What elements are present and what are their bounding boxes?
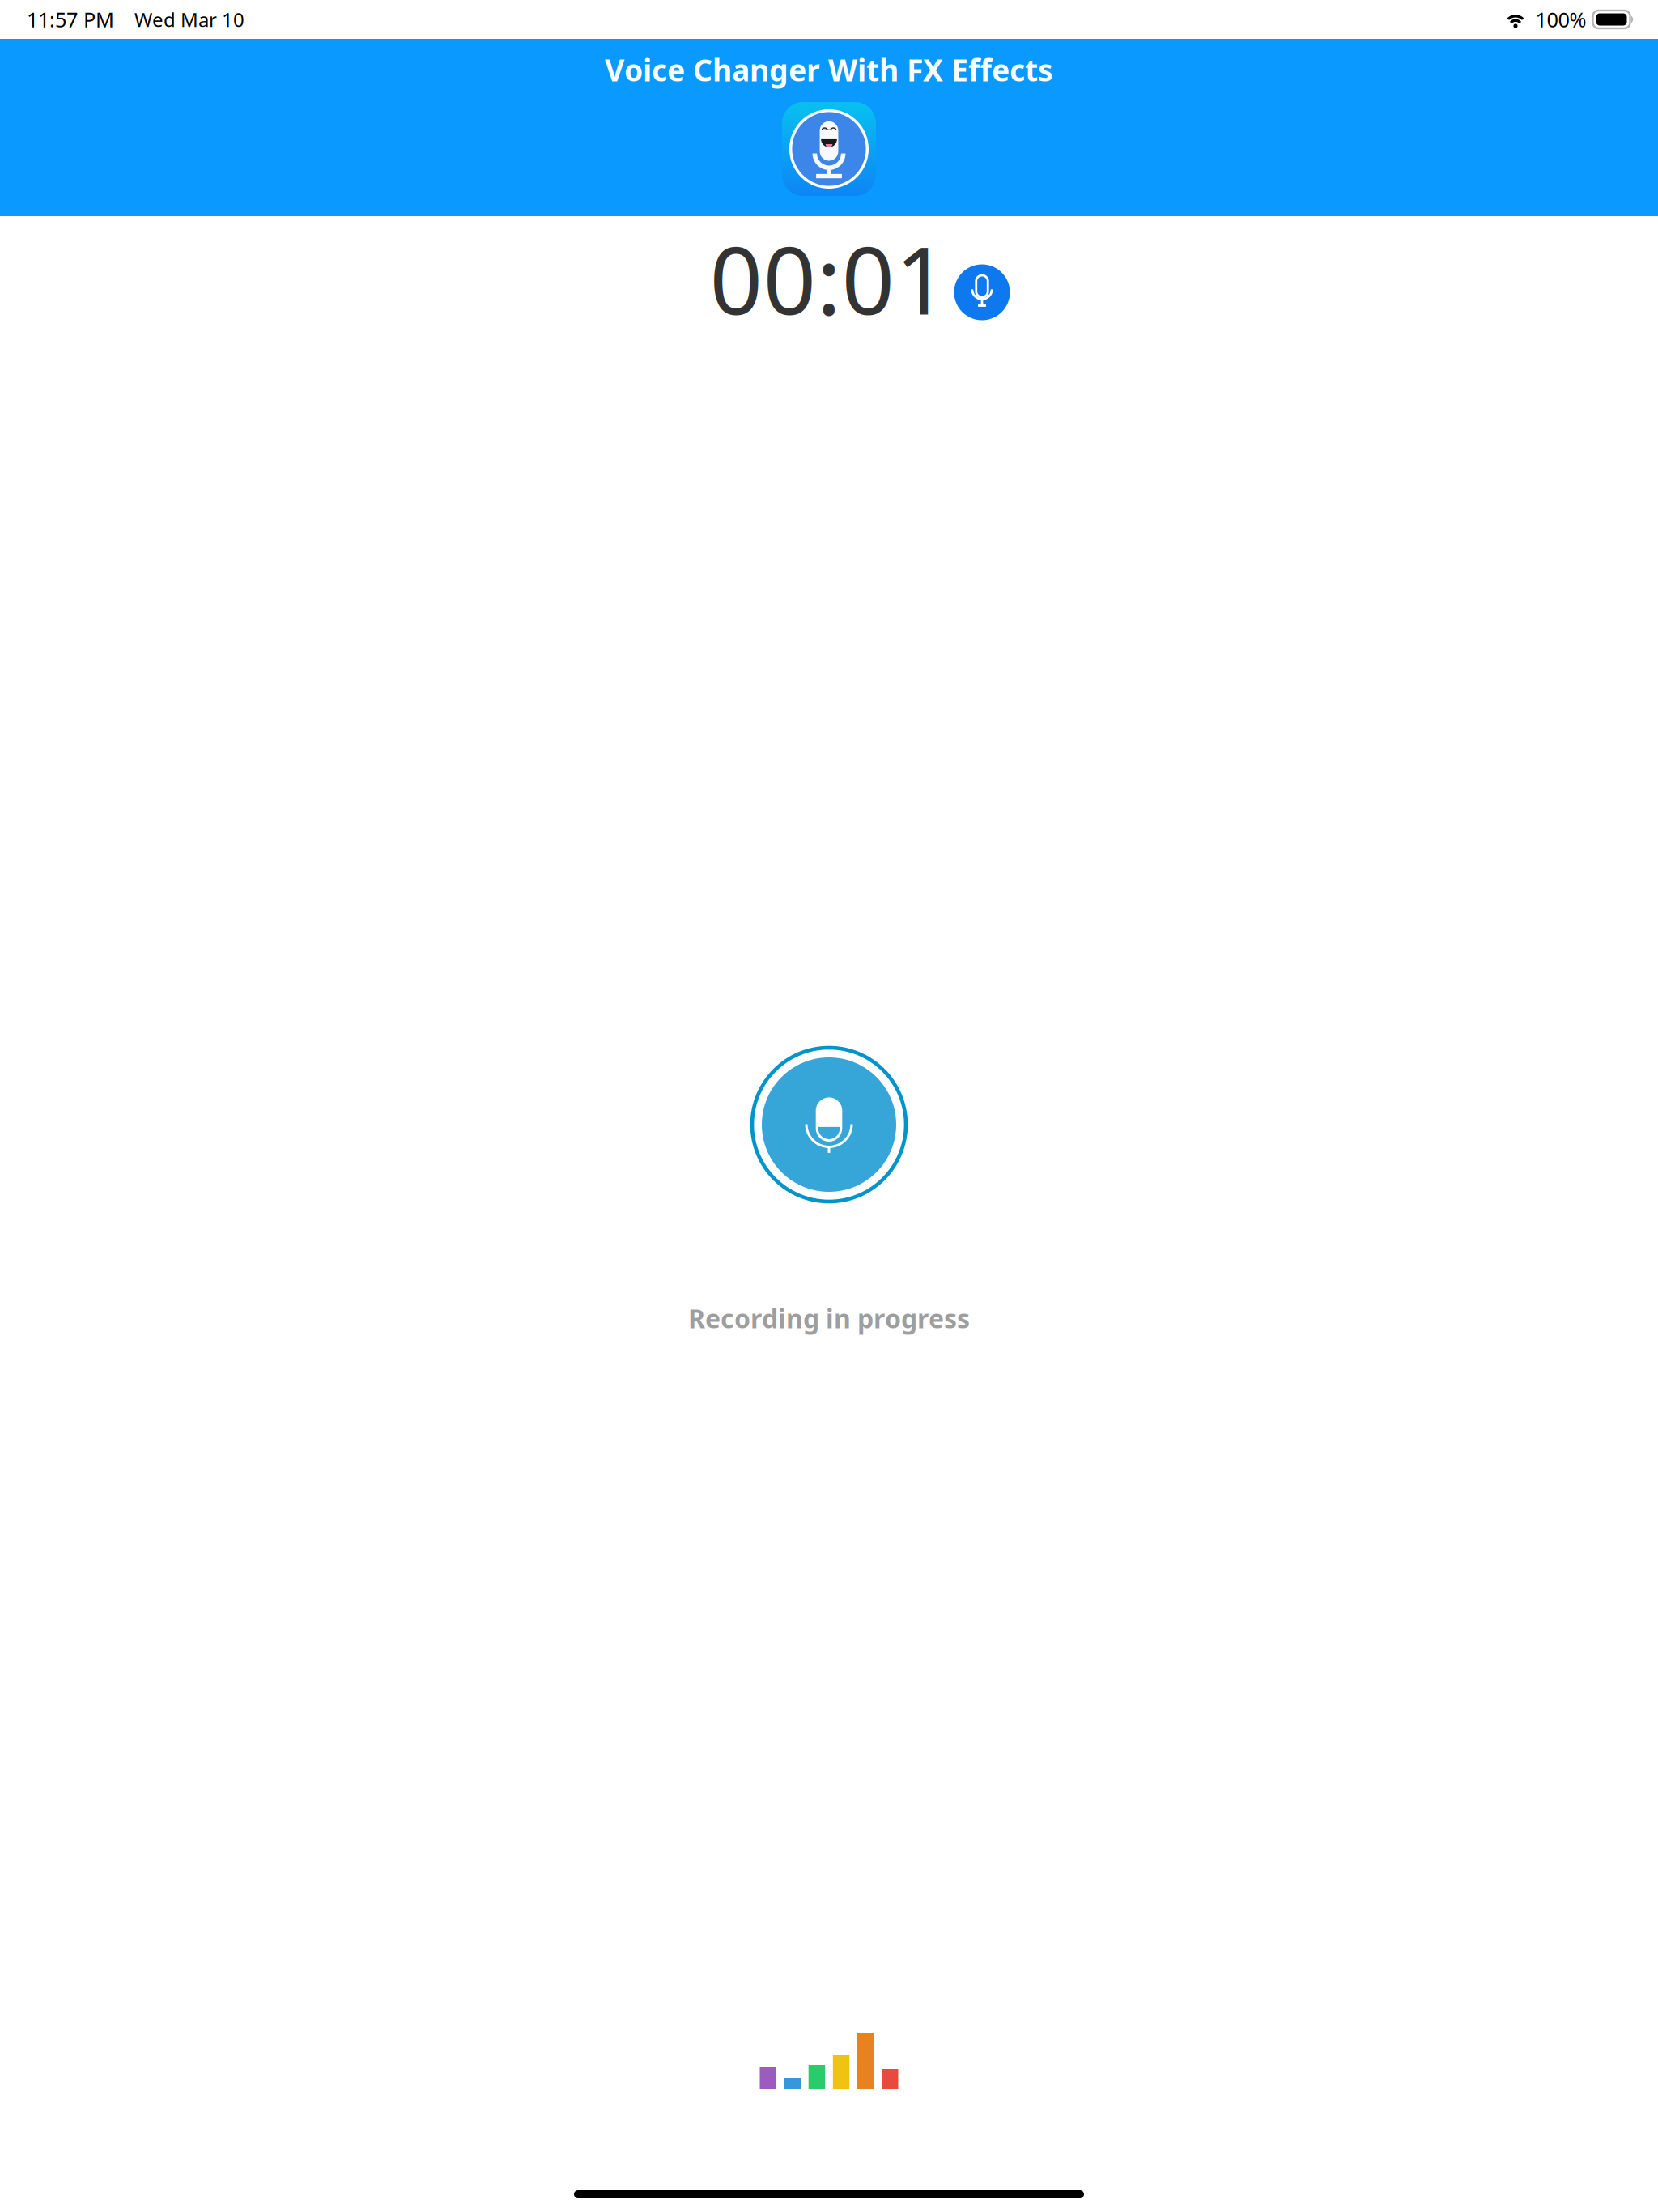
staticText: 00:01 [710, 217, 948, 340]
staticText: Recording in progress [688, 1301, 970, 1335]
button[interactable]: Voice Changer [782, 102, 876, 196]
staticText: Voice Changer With FX Effects [605, 50, 1053, 90]
button[interactable]: Record [752, 1048, 906, 1202]
staticText: 100% [1535, 6, 1586, 33]
staticText: Wed Mar 10 [134, 7, 244, 32]
button[interactable]: Voice Changer With FX Effects [465, 47, 1193, 92]
staticText: 11:57 PM [27, 6, 114, 33]
button[interactable]: Microphone [954, 264, 1010, 320]
